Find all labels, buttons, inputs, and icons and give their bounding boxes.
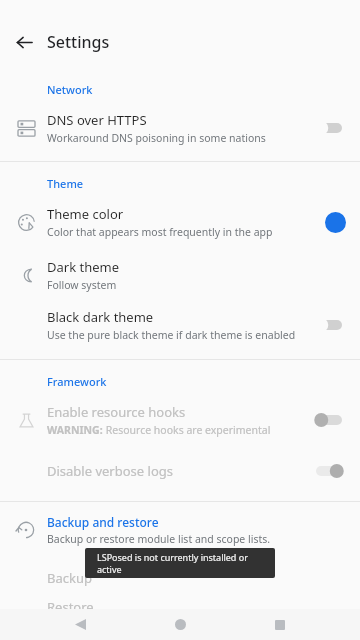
staticText: Framework [47, 374, 107, 389]
staticText: Resource hooks are experimental [103, 423, 271, 437]
button[interactable]: Theme color [0, 199, 360, 245]
button[interactable] [312, 408, 346, 432]
button[interactable]: Restore [0, 598, 360, 609]
button[interactable]: Back [60, 609, 100, 640]
staticText: Dark theme [47, 258, 120, 276]
staticText: WARNING: [47, 423, 103, 437]
button[interactable]: Recents [260, 609, 300, 640]
button[interactable]: Black dark theme [0, 303, 360, 347]
button[interactable]: Disable verbose logs [0, 453, 360, 489]
staticText: Black dark theme [47, 308, 154, 326]
staticText: Backup [47, 569, 92, 587]
staticText: Theme [47, 176, 84, 191]
staticText: Color that appears most frequently in th… [47, 225, 273, 239]
staticText: Disable verbose logs [47, 462, 312, 480]
staticText: Workaround DNS poisoning in some nations [47, 131, 266, 145]
button[interactable]: Home [160, 609, 200, 640]
staticText: Use the pure black theme if dark theme i… [47, 328, 296, 342]
button[interactable] [312, 313, 346, 337]
button[interactable]: Enable resource hooks [0, 397, 360, 443]
staticText: Backup and restore [47, 514, 159, 530]
button[interactable]: Backup [0, 562, 360, 594]
button[interactable]: Back [10, 28, 38, 56]
staticText: Settings [47, 31, 110, 53]
button[interactable]: Backup and restore [0, 502, 360, 550]
staticText: Enable resource hooks [47, 403, 186, 421]
staticText: LSPosed is not currently installed or ac… [97, 551, 263, 575]
staticText: Follow system [47, 278, 117, 292]
staticText: Network [47, 82, 93, 97]
button[interactable]: Dark theme [0, 253, 360, 297]
button[interactable] [312, 116, 346, 140]
button[interactable] [312, 459, 346, 483]
staticText: Restore [47, 598, 94, 609]
button[interactable]: DNS over HTTPS [0, 105, 360, 151]
staticText: DNS over HTTPS [47, 111, 147, 129]
staticText: Theme color [47, 205, 124, 223]
button[interactable]: LSPosed is not currently installed or ac… [85, 548, 275, 578]
staticText: Backup or restore module list and scope … [47, 532, 271, 546]
